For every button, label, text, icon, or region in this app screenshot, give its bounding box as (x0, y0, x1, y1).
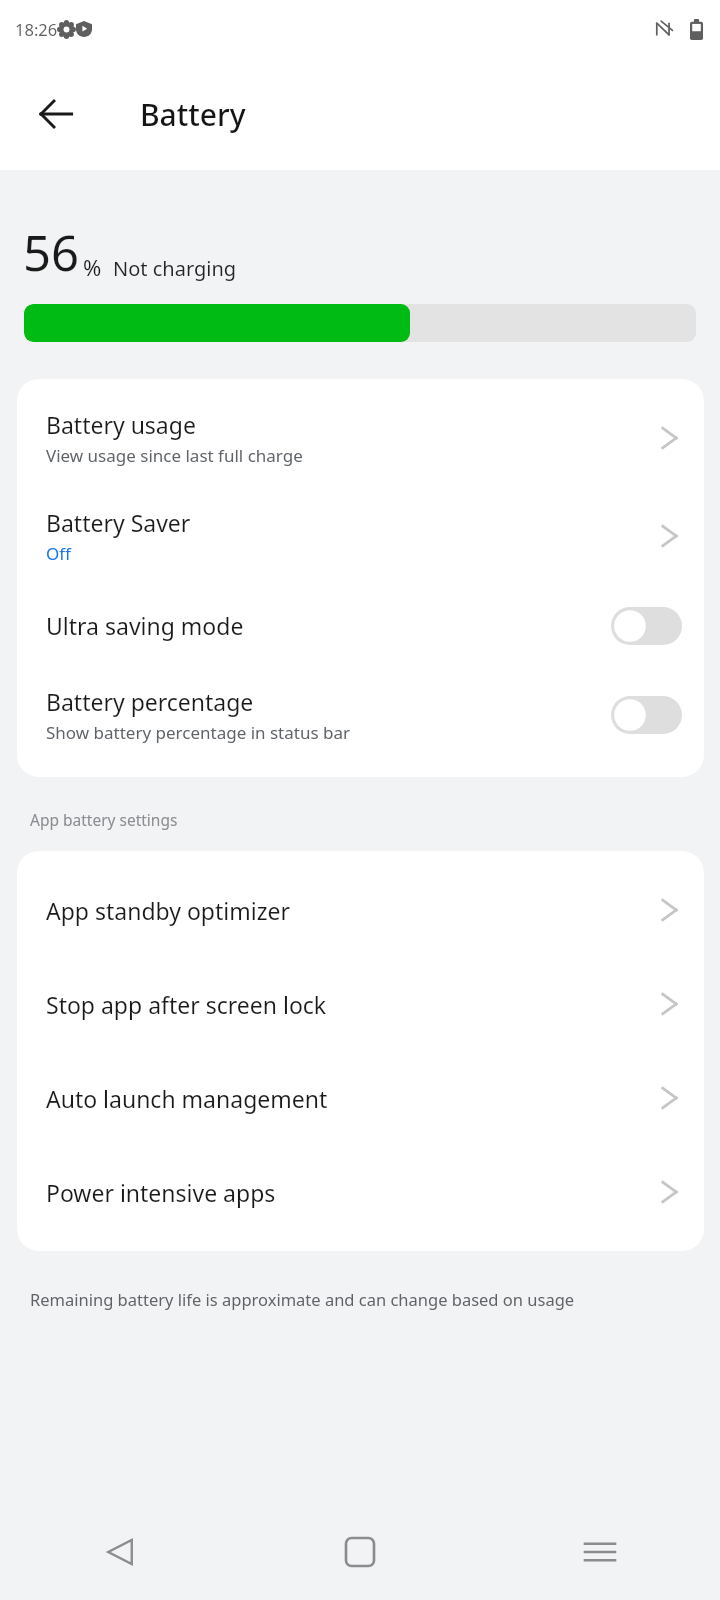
staticText: Battery percentage (46, 686, 254, 717)
button[interactable]: Recent apps (480, 1504, 720, 1600)
button[interactable]: Battery Saver (17, 487, 704, 585)
button[interactable]: Auto launch management (17, 1051, 704, 1145)
staticText: % (83, 252, 102, 282)
staticText: Ultra saving mode (46, 610, 244, 641)
button[interactable]: Power intensive apps (17, 1145, 704, 1239)
button[interactable]: Back (0, 1504, 240, 1600)
button[interactable]: Back (22, 80, 90, 148)
staticText: Show battery percentage in status bar (46, 721, 350, 744)
staticText: Power intensive apps (46, 1177, 276, 1208)
staticText: Battery (140, 94, 246, 135)
staticText: Battery Saver (46, 507, 191, 538)
staticText: App battery settings (30, 809, 178, 830)
button[interactable]: Toggle (611, 607, 682, 645)
staticText: 56 (23, 219, 80, 286)
staticText: View usage since last full charge (46, 444, 303, 467)
button[interactable]: Toggle (611, 696, 682, 734)
staticText: Auto launch management (46, 1083, 328, 1114)
button[interactable]: App standby optimizer (17, 863, 704, 957)
staticText: Stop app after screen lock (46, 989, 327, 1020)
staticText: Remaining battery life is approximate an… (30, 1288, 575, 1310)
staticText: Battery usage (46, 409, 196, 440)
button[interactable]: Ultra saving mode (17, 585, 704, 666)
staticText: Off (46, 542, 71, 565)
button[interactable]: Battery usage (17, 389, 704, 487)
staticText: 18:26 (15, 18, 58, 40)
staticText: App standby optimizer (46, 895, 290, 926)
button[interactable]: Stop app after screen lock (17, 957, 704, 1051)
staticText: Not charging (113, 255, 237, 282)
button[interactable]: Home (240, 1504, 480, 1600)
button[interactable]: Battery percentage (17, 666, 704, 764)
